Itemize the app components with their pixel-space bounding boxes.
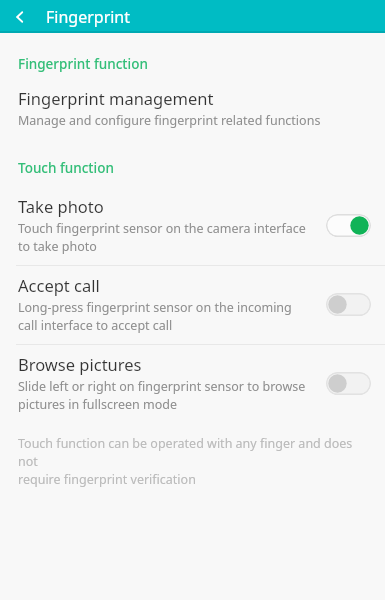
staticText: Manage and configure fingerprint related… [18, 112, 321, 129]
staticText: Touch fingerprint sensor on the camera i… [18, 220, 306, 255]
button[interactable]: On [326, 214, 371, 237]
button[interactable]: Take photo [0, 187, 385, 265]
button[interactable]: Off [326, 293, 371, 316]
staticText: Fingerprint [46, 6, 131, 28]
button[interactable]: Off [326, 372, 371, 395]
staticText: Fingerprint management [18, 87, 214, 109]
staticText: Fingerprint function [18, 55, 148, 73]
staticText: Long-press fingerprint sensor on the inc… [18, 299, 292, 334]
staticText: Accept call [18, 274, 100, 296]
staticText: Browse pictures [18, 353, 142, 375]
staticText: Take photo [18, 195, 104, 217]
staticText: Touch function [18, 159, 114, 177]
button[interactable]: Back [0, 0, 40, 33]
button[interactable]: Accept call [0, 266, 385, 344]
button[interactable]: Browse pictures [0, 345, 385, 423]
button[interactable]: Fingerprint management [0, 87, 385, 129]
staticText: Slide left or right on fingerprint senso… [18, 378, 306, 413]
staticText: Touch function can be operated with any … [18, 435, 369, 488]
